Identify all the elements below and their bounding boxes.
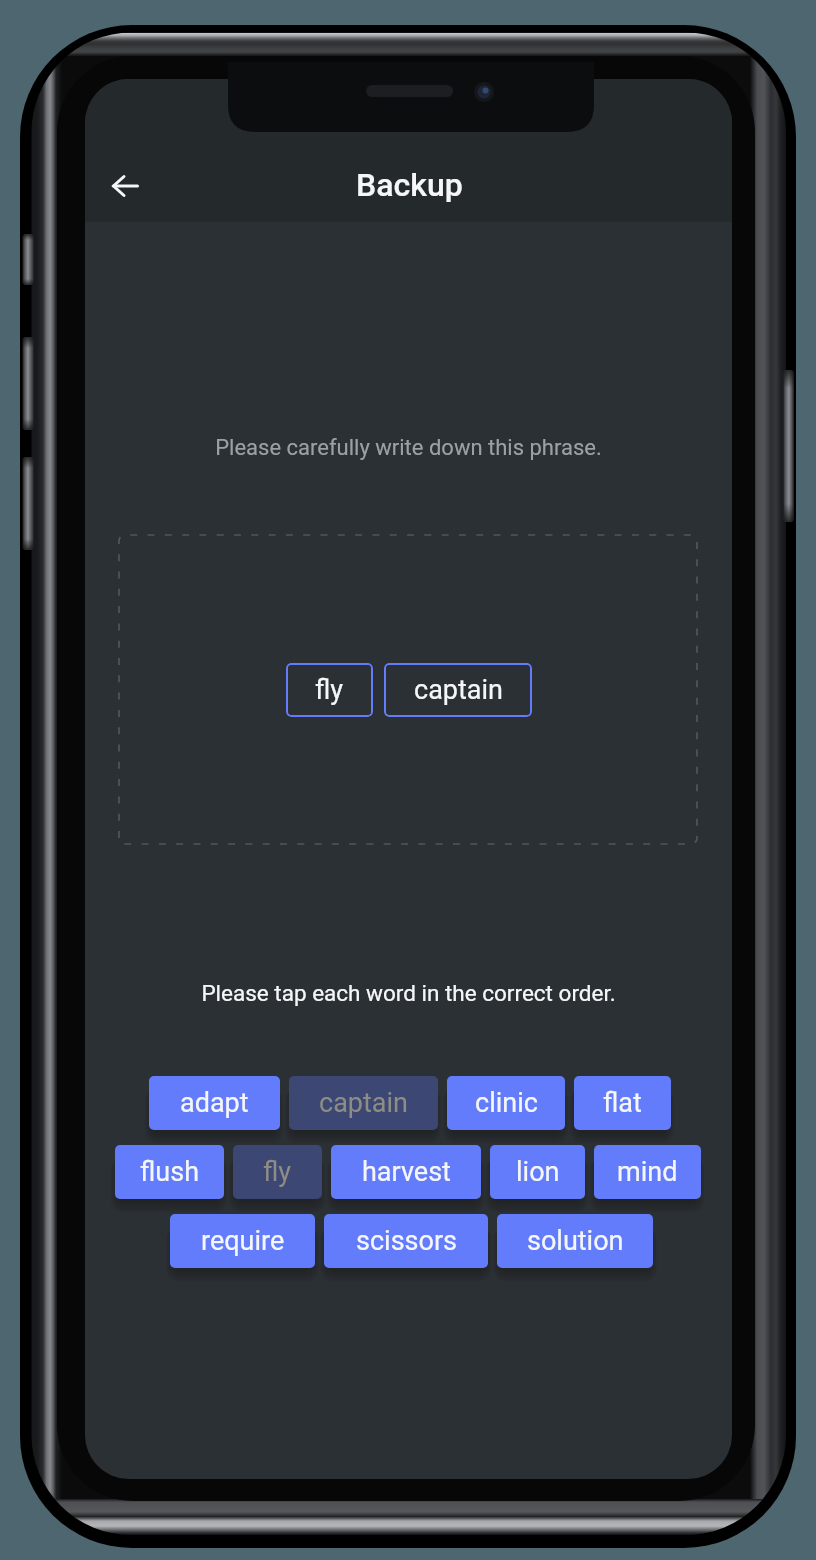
staticText: flush (140, 1156, 200, 1188)
button[interactable]: scissors (324, 1214, 488, 1268)
button[interactable]: solution (497, 1214, 653, 1268)
button[interactable]: fly (286, 663, 373, 717)
button[interactable]: Back (97, 158, 153, 214)
button[interactable]: harvest (331, 1145, 481, 1199)
button[interactable]: require (170, 1214, 315, 1268)
button[interactable]: fly (233, 1145, 322, 1199)
staticText: mind (617, 1156, 678, 1188)
staticText: captain (414, 674, 503, 706)
staticText: captain (319, 1087, 408, 1119)
button[interactable]: mind (594, 1145, 701, 1199)
staticText: Backup (356, 166, 463, 204)
staticText: fly (315, 674, 344, 706)
staticText: clinic (475, 1087, 538, 1119)
button[interactable]: lion (490, 1145, 585, 1199)
staticText: Please tap each word in the correct orde… (85, 980, 732, 1006)
button[interactable]: flat (574, 1076, 671, 1130)
staticText: scissors (356, 1225, 457, 1257)
staticText: solution (527, 1225, 624, 1257)
button[interactable]: captain (289, 1076, 438, 1130)
staticText: harvest (362, 1156, 451, 1188)
button[interactable]: adapt (149, 1076, 280, 1130)
staticText: fly (263, 1156, 292, 1188)
staticText: adapt (180, 1087, 249, 1119)
staticText: Please carefully write down this phrase. (85, 435, 732, 461)
staticText: flat (603, 1087, 642, 1119)
button[interactable]: captain (384, 663, 532, 717)
staticText: require (201, 1225, 285, 1257)
staticText: lion (516, 1156, 560, 1188)
button[interactable]: clinic (447, 1076, 565, 1130)
button[interactable]: flush (115, 1145, 224, 1199)
